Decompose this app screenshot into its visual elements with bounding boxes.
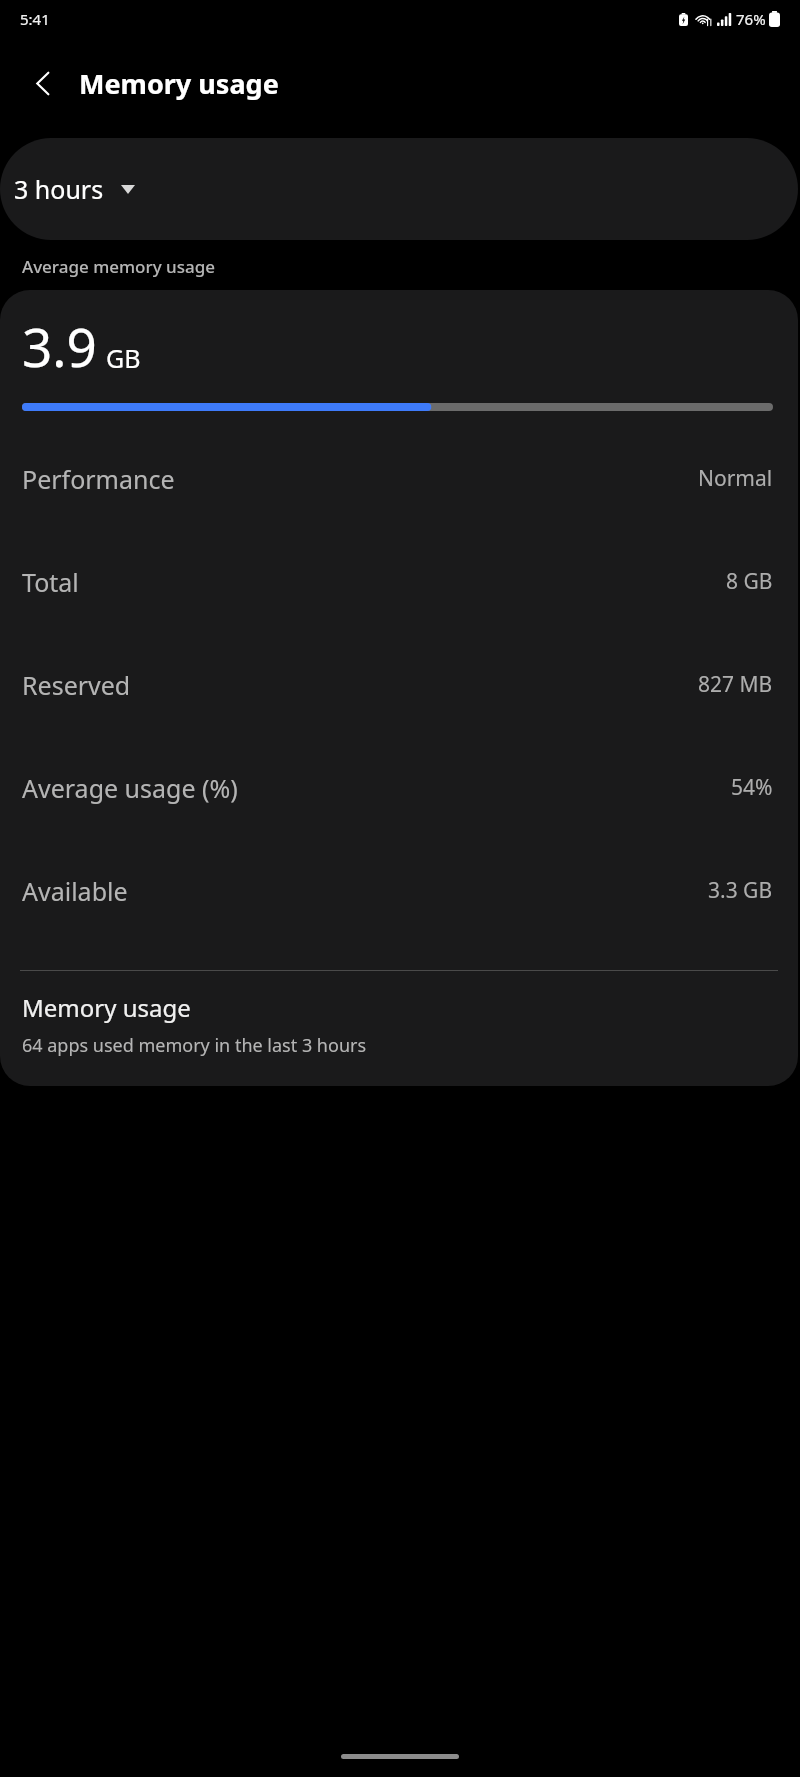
- button[interactable]: 3 hours: [0, 138, 798, 240]
- staticText: 827 MB: [698, 670, 773, 699]
- staticText: GB: [106, 341, 141, 375]
- staticText: Total: [22, 565, 79, 599]
- staticText: 64 apps used memory in the last 3 hours: [22, 1033, 367, 1058]
- staticText: Memory usage: [79, 65, 279, 102]
- button[interactable]: Average usage (%): [0, 736, 798, 839]
- button[interactable]: Reserved: [0, 633, 798, 736]
- staticText: 3 hours: [14, 172, 104, 206]
- staticText: 8 GB: [726, 567, 773, 596]
- staticText: Reserved: [22, 668, 131, 702]
- staticText: 3.9: [22, 310, 97, 382]
- button[interactable]: Performance: [0, 427, 798, 530]
- staticText: 5:41: [20, 9, 50, 29]
- staticText: Average memory usage: [22, 255, 216, 278]
- staticText: Performance: [22, 462, 175, 496]
- staticText: Normal: [698, 464, 773, 493]
- button[interactable]: Memory usage: [0, 991, 798, 1086]
- button[interactable]: Total: [0, 530, 798, 633]
- staticText: 54%: [731, 773, 773, 802]
- staticText: 3.3 GB: [708, 876, 773, 905]
- button[interactable]: Back: [16, 56, 70, 110]
- staticText: Available: [22, 874, 128, 908]
- button[interactable]: Available: [0, 839, 798, 942]
- staticText: Memory usage: [22, 991, 191, 1024]
- staticText: 76%: [736, 9, 766, 29]
- staticText: Average usage (%): [22, 771, 238, 805]
